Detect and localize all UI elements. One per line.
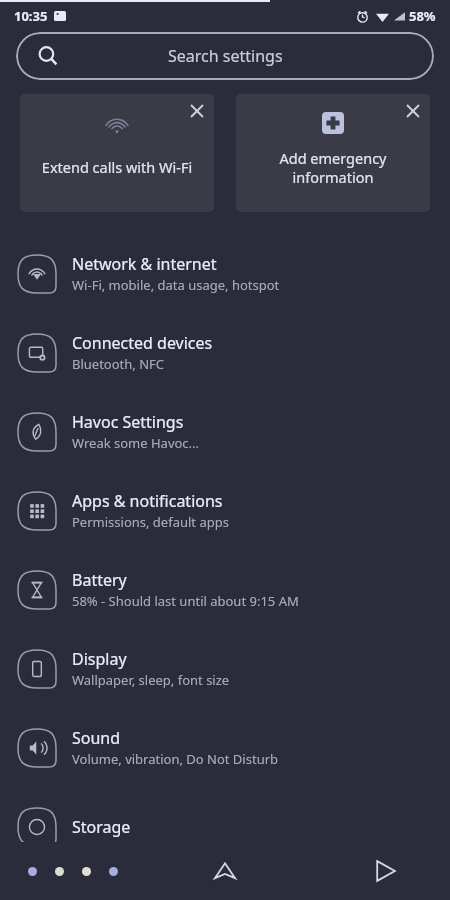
staticText: Volume, vibration, Do Not Disturb (72, 750, 279, 768)
staticText: Wreak some Havoc... (72, 434, 200, 452)
staticText: 58% - Should last until about 9:15 AM (72, 592, 299, 610)
button[interactable]: Sound (0, 708, 450, 787)
staticText: Add emergency information (240, 148, 426, 187)
button[interactable]: Battery (0, 550, 450, 629)
staticText: Network & internet (72, 253, 217, 275)
staticText: Bluetooth, NFC (72, 355, 165, 373)
button[interactable]: Network & internet (0, 234, 450, 313)
button[interactable]: Apps & notifications (0, 471, 450, 550)
staticText: Storage (72, 816, 131, 838)
staticText: Connected devices (72, 332, 213, 354)
button[interactable]: Connected devices (0, 313, 450, 392)
staticText: Extend calls with Wi-Fi (24, 157, 210, 177)
staticText: 10:35 (14, 7, 48, 25)
button[interactable]: Dismiss (184, 98, 210, 124)
button[interactable]: Dismiss (20, 94, 214, 212)
button[interactable]: Havoc Settings (0, 392, 450, 471)
button[interactable]: Search settings (16, 32, 434, 80)
staticText: Wallpaper, sleep, font size (72, 671, 230, 689)
button[interactable]: Dismiss (236, 94, 430, 212)
button[interactable]: Back (362, 848, 408, 894)
staticText: Battery (72, 569, 127, 591)
staticText: Havoc Settings (72, 411, 184, 433)
button[interactable]: Dismiss (400, 98, 426, 124)
staticText: Permissions, default apps (72, 513, 229, 531)
staticText: Wi-Fi, mobile, data usage, hotspot (72, 276, 280, 294)
staticText: Apps & notifications (72, 490, 223, 512)
button[interactable]: Storage (0, 787, 450, 866)
staticText: Sound (72, 727, 121, 749)
button[interactable]: Display (0, 629, 450, 708)
staticText: 58% (409, 7, 436, 25)
staticText: Search settings (168, 45, 283, 67)
staticText: Display (72, 648, 127, 670)
button[interactable]: Recents (28, 867, 118, 876)
button[interactable]: Home (202, 848, 248, 894)
